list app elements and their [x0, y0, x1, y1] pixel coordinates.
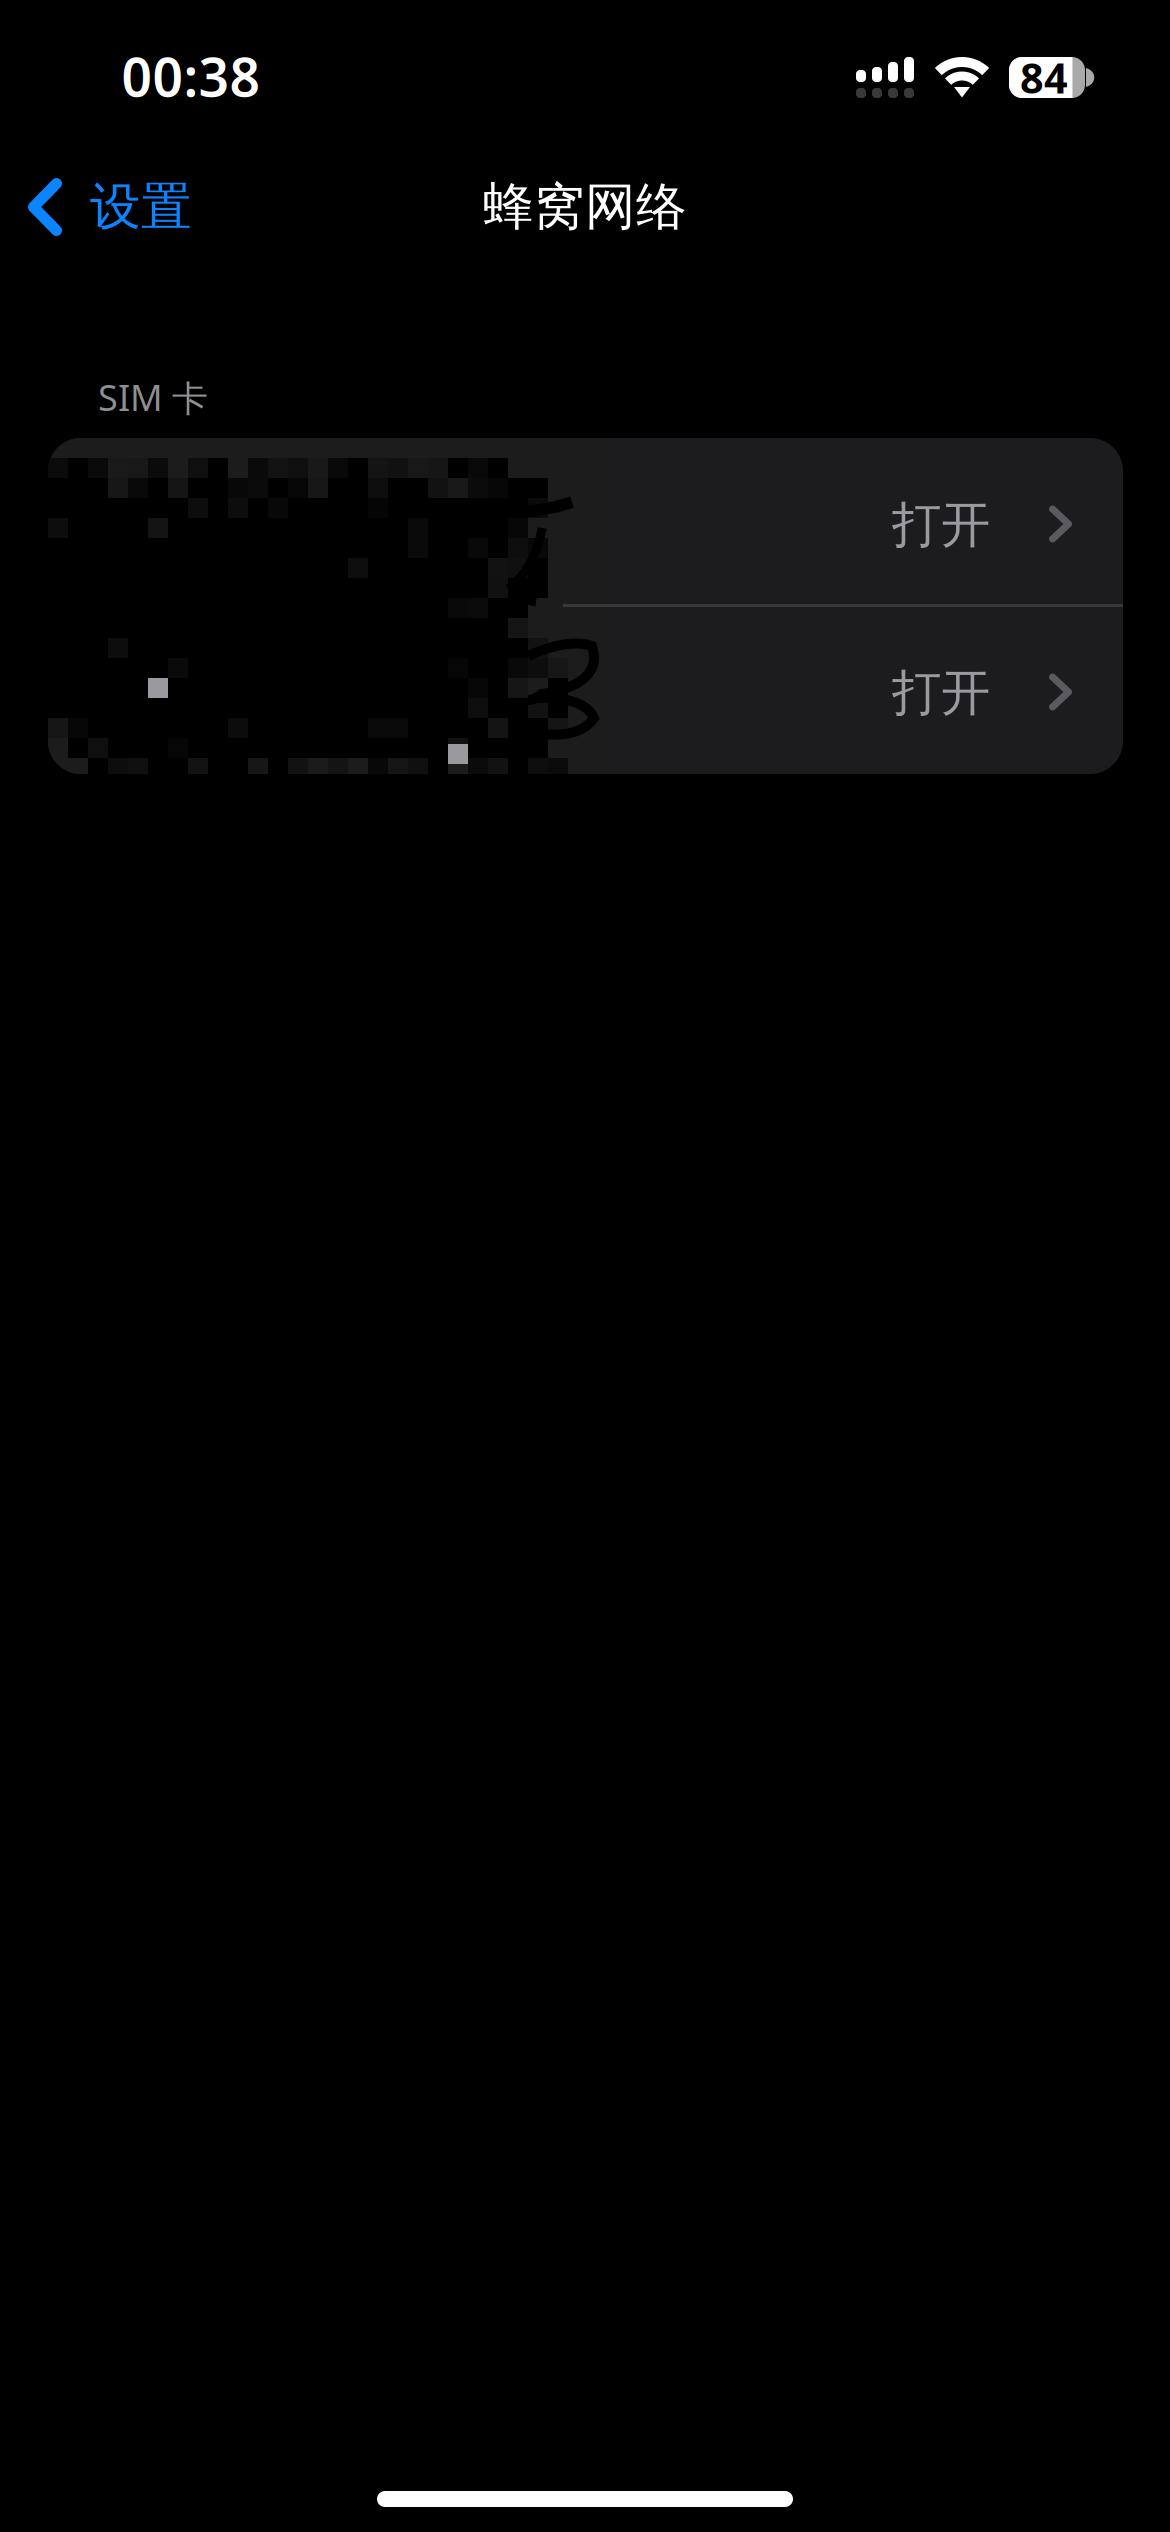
button[interactable]: 打开 — [48, 604, 1123, 774]
staticText: 打开 — [892, 663, 990, 723]
staticText: 84 — [1020, 50, 1068, 105]
button[interactable]: 打开 — [48, 438, 1123, 604]
staticText: 蜂窝网络 — [483, 176, 687, 238]
button[interactable]: 设置 — [0, 155, 216, 259]
staticText: SIM 卡 — [98, 373, 208, 421]
staticText: 设置 — [90, 176, 192, 238]
staticText: 00:38 — [121, 41, 260, 111]
staticText: 打开 — [892, 495, 990, 555]
